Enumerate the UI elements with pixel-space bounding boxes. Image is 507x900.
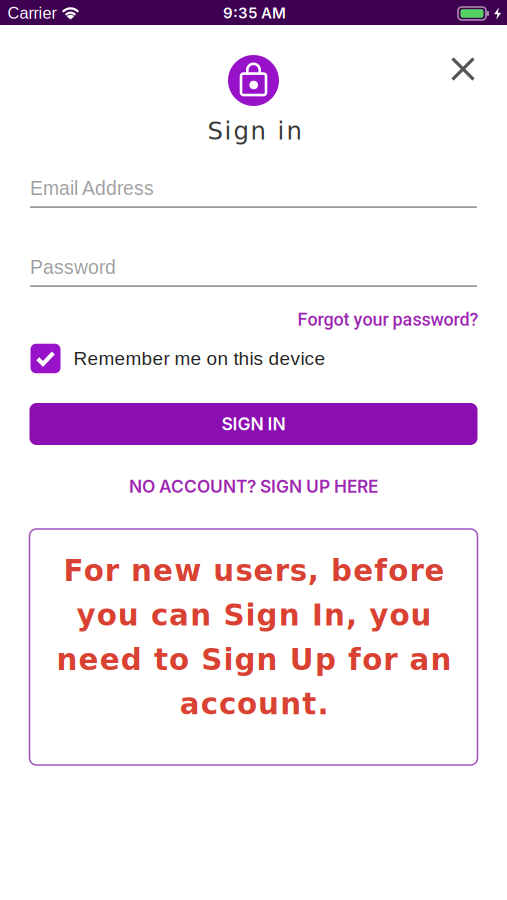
button[interactable]: Forgot your password? — [297, 309, 478, 330]
button[interactable]: Password — [30, 241, 477, 287]
staticText: Remember me on this device — [73, 348, 325, 369]
staticText: Sign in — [207, 117, 301, 145]
staticText: SIGN IN — [221, 413, 285, 434]
button[interactable]: Remember me on this device — [30, 344, 325, 373]
button[interactable]: Email Address — [30, 162, 477, 208]
staticText: Forgot your password? — [297, 309, 478, 330]
staticText: 9:35 AM — [223, 4, 286, 22]
staticText: For new users, before you can Sign In, y… — [56, 554, 451, 721]
staticText: NO ACCOUNT? SIGN UP HERE — [129, 476, 378, 497]
staticText: Email Address — [30, 177, 154, 199]
staticText: Carrier — [7, 4, 56, 22]
button[interactable]: SIGN IN — [29, 403, 477, 445]
button[interactable]: Close — [439, 45, 487, 93]
button[interactable]: NO ACCOUNT? SIGN UP HERE — [129, 476, 378, 497]
staticText: Password — [30, 256, 116, 278]
